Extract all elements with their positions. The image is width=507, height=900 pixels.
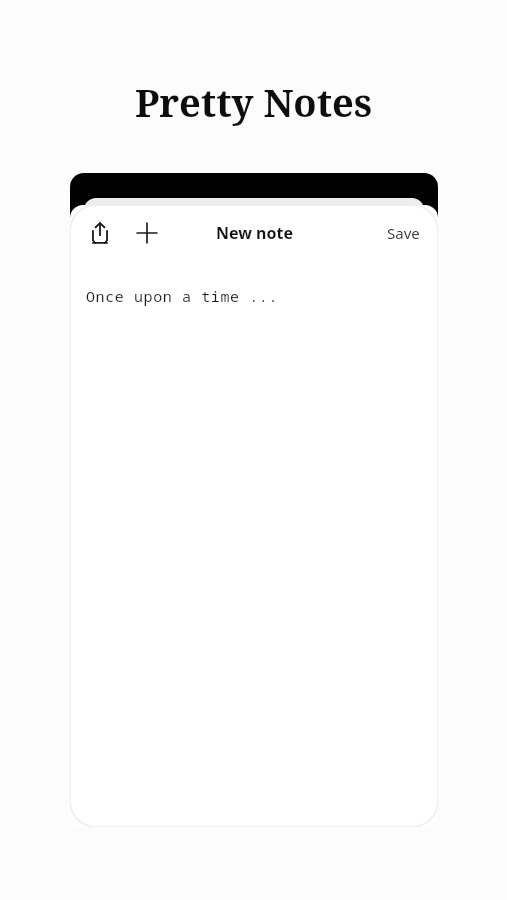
button[interactable]: Once upon a time ... xyxy=(86,286,422,306)
button[interactable]: Save xyxy=(369,215,438,251)
staticText: Pretty Notes xyxy=(0,76,507,128)
staticText: Save xyxy=(387,223,420,243)
staticText: New note xyxy=(216,222,293,244)
button[interactable]: Share xyxy=(82,215,118,251)
button[interactable]: New note xyxy=(129,215,165,251)
staticText: Once upon a time ... xyxy=(86,286,279,306)
